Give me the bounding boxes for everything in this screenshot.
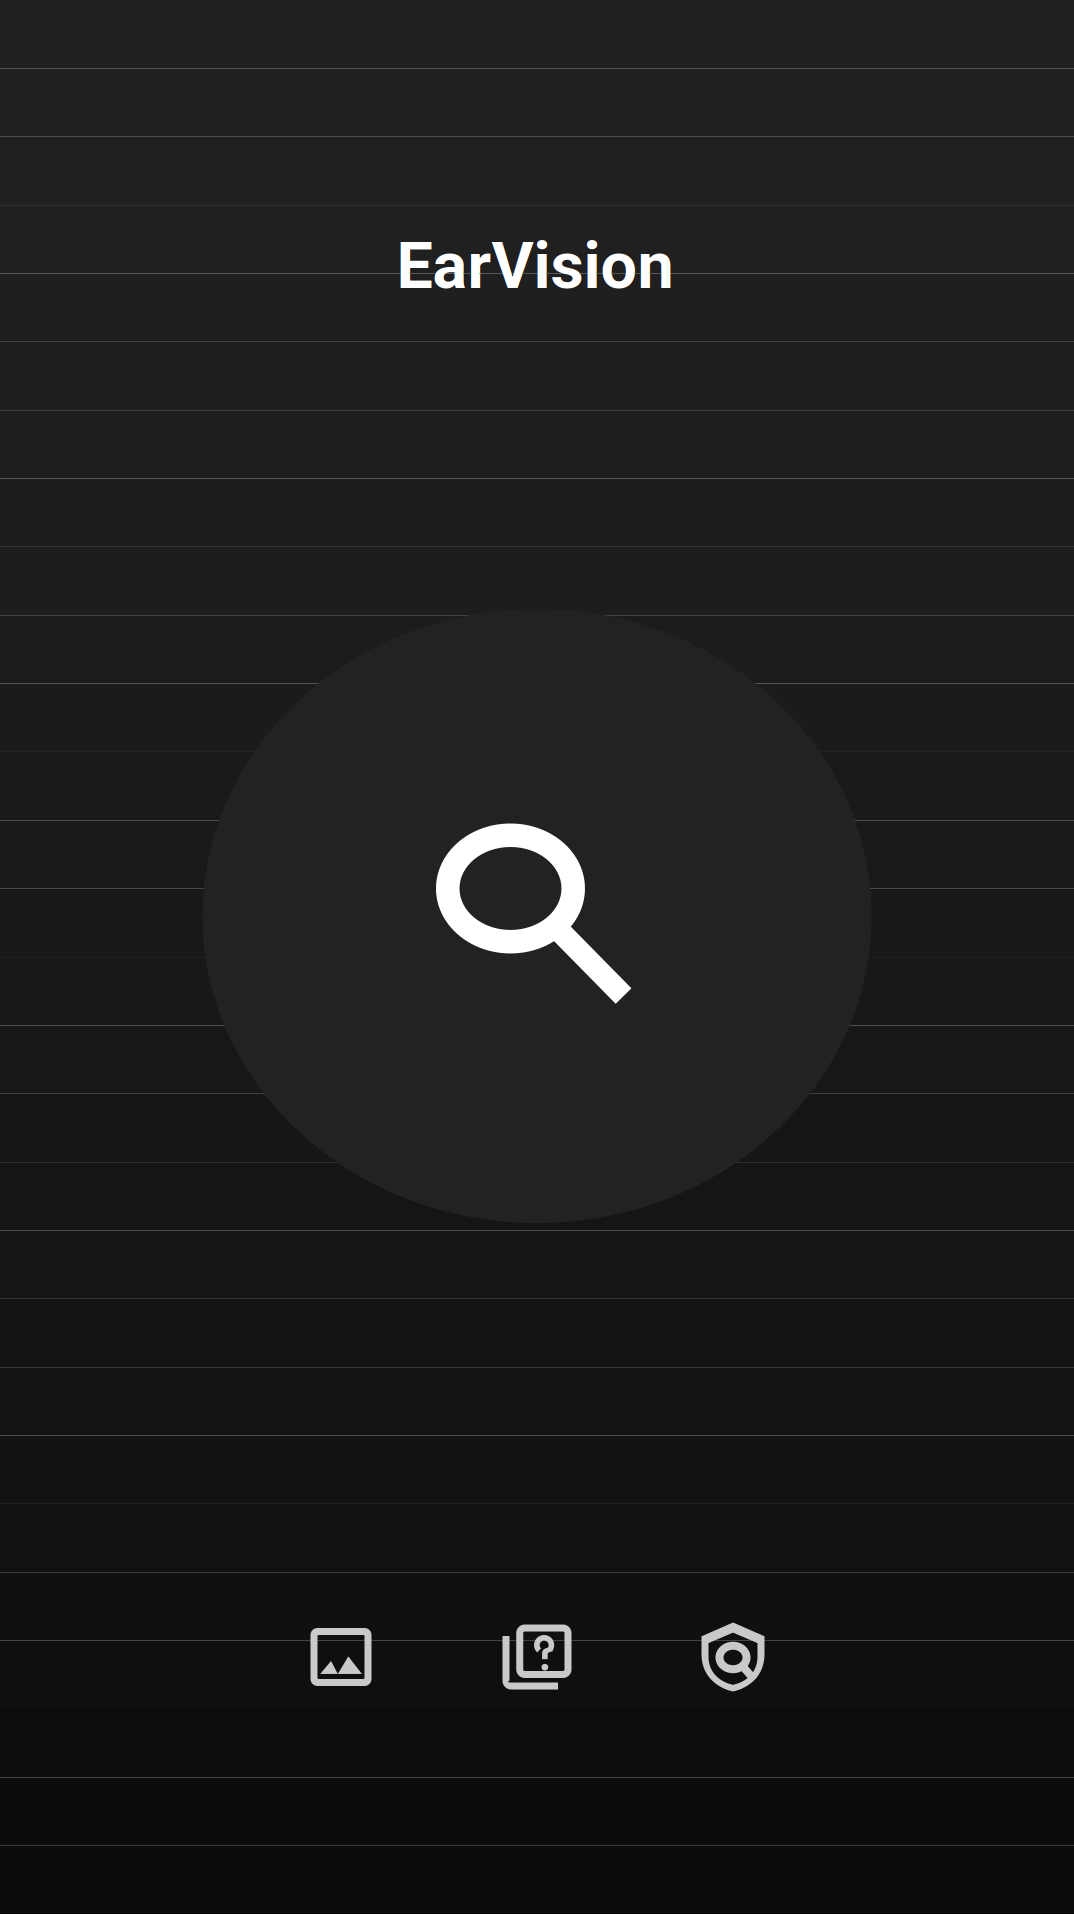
button[interactable]: Scan: [202, 609, 871, 1223]
button[interactable]: Privacy: [635, 1602, 831, 1712]
button[interactable]: Help: [439, 1602, 635, 1712]
staticText: EarVision: [396, 228, 673, 304]
button[interactable]: Photo library: [243, 1602, 439, 1712]
